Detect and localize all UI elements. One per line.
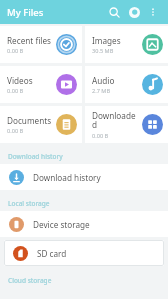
staticText: Download history xyxy=(8,152,63,161)
staticText: 0.00 B xyxy=(7,47,24,55)
button[interactable]: SD card xyxy=(4,240,164,266)
staticText: Local storage xyxy=(8,199,50,208)
staticText: Audio xyxy=(92,75,115,86)
button[interactable]: Videos xyxy=(0,66,82,103)
staticText: 0.00 B xyxy=(7,127,24,135)
button[interactable]: Search xyxy=(105,3,123,21)
staticText: 2.7 MB xyxy=(92,87,111,95)
button[interactable]: Downloaded apps xyxy=(85,106,168,143)
staticText: SD card xyxy=(37,248,67,259)
button[interactable]: Recent files xyxy=(0,26,82,63)
staticText: Device storage xyxy=(33,219,90,230)
staticText: Recent files xyxy=(7,35,51,46)
staticText: Documents xyxy=(7,115,52,126)
staticText: Cloud storage xyxy=(8,276,52,285)
button[interactable]: Device storage xyxy=(0,211,168,237)
button[interactable]: Images xyxy=(85,26,168,63)
staticText: Videos xyxy=(7,75,33,86)
staticText: Download history xyxy=(33,172,101,183)
button[interactable]: Documents xyxy=(0,106,82,143)
staticText: 30.5 MB xyxy=(92,47,114,55)
staticText: 0.00 B xyxy=(7,87,24,95)
staticText: Downloaded apps xyxy=(92,110,140,131)
button[interactable]: Cloud account xyxy=(125,3,143,21)
button[interactable]: Audio xyxy=(85,66,168,103)
staticText: Images xyxy=(92,35,121,46)
staticText: My Files xyxy=(7,6,44,19)
staticText: 0.00 B xyxy=(92,132,109,140)
button[interactable]: More options xyxy=(145,4,161,20)
button[interactable]: Download history xyxy=(0,164,168,190)
